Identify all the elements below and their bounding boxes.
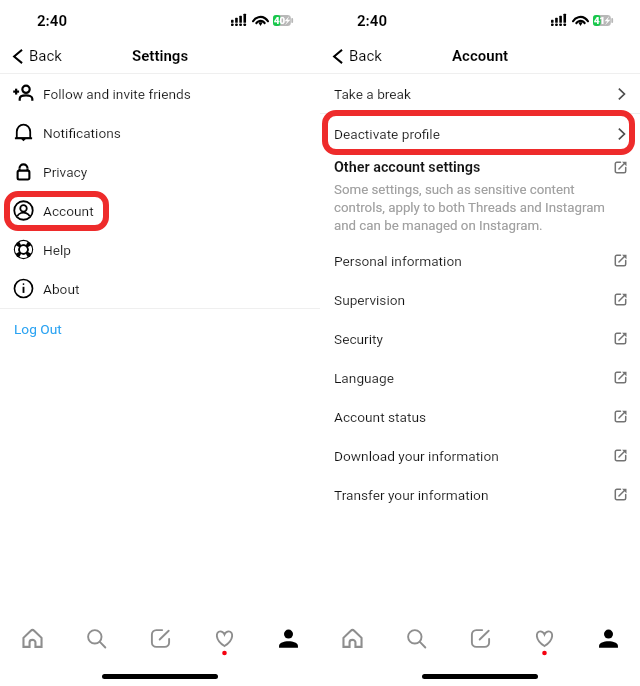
button[interactable]: Privacy: [0, 152, 320, 191]
button[interactable]: Log Out: [0, 309, 320, 348]
staticText: Help: [43, 242, 72, 258]
staticText: Other account settings: [334, 159, 614, 176]
staticText: Transfer your information: [334, 487, 614, 503]
button[interactable]: Home: [320, 614, 384, 662]
staticText: Account: [43, 203, 94, 219]
staticText: 2:40: [37, 12, 68, 30]
button[interactable]: Profile: [576, 614, 640, 662]
button[interactable]: Supervision: [320, 280, 640, 319]
button[interactable]: New thread: [448, 614, 512, 662]
button[interactable]: Language: [320, 358, 640, 397]
staticText: Take a break: [334, 86, 618, 102]
staticText: 2:40: [357, 12, 388, 30]
staticText: Settings: [132, 47, 189, 65]
button[interactable]: Search: [384, 614, 448, 662]
staticText: Notifications: [43, 125, 121, 141]
staticText: Follow and invite friends: [43, 86, 191, 102]
button[interactable]: Back: [320, 41, 392, 71]
button[interactable]: Take a break: [320, 74, 640, 113]
button[interactable]: Help: [0, 230, 320, 269]
button[interactable]: Profile: [256, 614, 320, 662]
button[interactable]: Back: [0, 41, 72, 71]
staticText: Log Out: [14, 321, 62, 337]
button[interactable]: Personal information: [320, 241, 640, 280]
staticText: Back: [29, 47, 62, 65]
staticText: Download your information: [334, 448, 614, 464]
staticText: Personal information: [334, 253, 614, 269]
button[interactable]: Notifications: [0, 113, 320, 152]
staticText: Security: [334, 331, 614, 347]
staticText: Privacy: [43, 164, 88, 180]
button[interactable]: Follow and invite friends: [0, 74, 320, 113]
staticText: Back: [349, 47, 382, 65]
staticText: Some settings, such as sensitive content…: [334, 182, 622, 233]
button[interactable]: New thread: [128, 614, 192, 662]
button[interactable]: Deactivate profile: [320, 114, 640, 153]
button[interactable]: Activity: [192, 614, 256, 662]
button[interactable]: Download your information: [320, 436, 640, 475]
button[interactable]: Other account settings: [320, 153, 640, 182]
button[interactable]: About: [0, 269, 320, 308]
staticText: Language: [334, 370, 614, 386]
staticText: Account status: [334, 409, 614, 425]
button[interactable]: Account status: [320, 397, 640, 436]
staticText: About: [43, 281, 80, 297]
button[interactable]: Account: [0, 191, 320, 230]
button[interactable]: Home: [0, 614, 64, 662]
staticText: 41: [594, 15, 605, 26]
staticText: 40: [274, 15, 285, 26]
button[interactable]: Search: [64, 614, 128, 662]
button[interactable]: Activity: [512, 614, 576, 662]
staticText: Deactivate profile: [334, 126, 618, 142]
button[interactable]: Transfer your information: [320, 475, 640, 514]
staticText: Supervision: [334, 292, 614, 308]
staticText: Account: [452, 47, 509, 65]
button[interactable]: Security: [320, 319, 640, 358]
